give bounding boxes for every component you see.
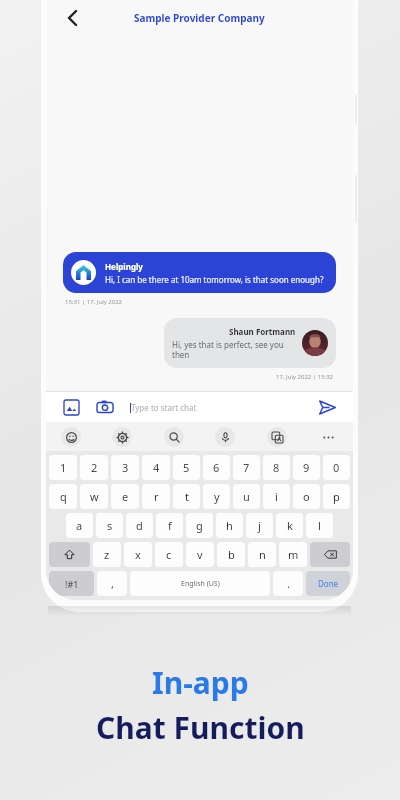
- staticText: i: [275, 489, 278, 504]
- staticText: v: [197, 547, 203, 562]
- button[interactable]: Settings: [112, 427, 132, 447]
- staticText: e: [122, 489, 129, 504]
- button[interactable]: More options: [318, 427, 338, 447]
- staticText: b: [228, 547, 235, 562]
- button[interactable]: g: [186, 513, 213, 538]
- button[interactable]: f: [156, 513, 183, 538]
- button[interactable]: q: [49, 484, 77, 509]
- staticText: m: [288, 547, 299, 562]
- button[interactable]: 7: [233, 455, 260, 480]
- button[interactable]: Voice input: [215, 427, 235, 447]
- staticText: h: [226, 518, 233, 533]
- button[interactable]: o: [293, 484, 320, 509]
- staticText: Done: [318, 578, 339, 589]
- button[interactable]: s: [96, 513, 123, 538]
- staticText: 5: [183, 460, 190, 475]
- staticText: Shaun Fortmann: [229, 326, 296, 337]
- staticText: 0: [333, 460, 340, 475]
- button[interactable]: Search: [164, 427, 184, 447]
- staticText: w: [90, 489, 99, 504]
- button[interactable]: y: [203, 484, 230, 509]
- button[interactable]: 0: [323, 455, 350, 480]
- staticText: p: [333, 489, 340, 504]
- staticText: j: [258, 518, 261, 533]
- button[interactable]: h: [216, 513, 243, 538]
- staticText: !#1: [65, 578, 79, 590]
- button[interactable]: [49, 542, 90, 567]
- staticText: l: [318, 518, 321, 533]
- button[interactable]: 6: [203, 455, 230, 480]
- staticText: z: [104, 547, 110, 562]
- button[interactable]: Shaun Fortmann: [164, 318, 336, 368]
- staticText: x: [135, 547, 141, 562]
- staticText: 2: [91, 460, 98, 475]
- button[interactable]: Translate: [267, 427, 287, 447]
- button[interactable]: j: [246, 513, 273, 538]
- button[interactable]: 9: [293, 455, 320, 480]
- button[interactable]: Attach image: [60, 396, 82, 418]
- button[interactable]: p: [323, 484, 350, 509]
- staticText: 15:31 | 17, July 2022: [65, 298, 123, 306]
- button[interactable]: k: [276, 513, 303, 538]
- button[interactable]: z: [93, 542, 121, 567]
- button[interactable]: 4: [142, 455, 170, 480]
- staticText: 6: [213, 460, 220, 475]
- staticText: s: [107, 518, 113, 533]
- button[interactable]: i: [263, 484, 290, 509]
- button[interactable]: w: [80, 484, 108, 509]
- staticText: ,: [111, 576, 114, 591]
- button[interactable]: 2: [80, 455, 108, 480]
- button[interactable]: Helpingly: [63, 252, 336, 293]
- button[interactable]: [310, 542, 350, 567]
- staticText: q: [60, 489, 67, 504]
- staticText: English (US): [181, 579, 220, 589]
- button[interactable]: Camera: [94, 396, 116, 418]
- staticText: In-app: [152, 662, 249, 703]
- button[interactable]: 8: [263, 455, 290, 480]
- staticText: t: [185, 489, 189, 504]
- staticText: d: [136, 518, 143, 533]
- button[interactable]: Back: [60, 5, 86, 31]
- button[interactable]: d: [126, 513, 153, 538]
- button[interactable]: x: [124, 542, 152, 567]
- staticText: o: [303, 489, 310, 504]
- button[interactable]: n: [248, 542, 276, 567]
- button[interactable]: English (US): [130, 571, 270, 596]
- staticText: Hi, yes that is perfect, see you then: [172, 339, 296, 360]
- staticText: 4: [153, 460, 160, 475]
- button[interactable]: Type to start chat: [130, 402, 315, 413]
- button[interactable]: !#1: [49, 571, 94, 596]
- button[interactable]: 5: [173, 455, 200, 480]
- staticText: u: [243, 489, 250, 504]
- button[interactable]: l: [306, 513, 333, 538]
- button[interactable]: 1: [49, 455, 77, 480]
- button[interactable]: c: [155, 542, 183, 567]
- staticText: f: [168, 518, 172, 533]
- button[interactable]: 3: [111, 455, 139, 480]
- staticText: c: [166, 547, 172, 562]
- staticText: 17, July 2022 | 15:32: [276, 373, 334, 381]
- staticText: Sample Provider Company: [134, 11, 265, 25]
- staticText: k: [287, 518, 293, 533]
- staticText: g: [196, 518, 203, 533]
- button[interactable]: v: [186, 542, 214, 567]
- button[interactable]: Emoji: [61, 427, 81, 447]
- staticText: Type to start chat: [131, 402, 197, 413]
- staticText: Helpingly: [105, 261, 143, 272]
- button[interactable]: b: [217, 542, 245, 567]
- button[interactable]: r: [142, 484, 170, 509]
- button[interactable]: a: [66, 513, 93, 538]
- staticText: 1: [60, 460, 67, 475]
- button[interactable]: Done: [306, 571, 350, 596]
- staticText: Hi, I can be there at 10am tomorrow, is …: [105, 274, 324, 285]
- staticText: 7: [243, 460, 250, 475]
- button[interactable]: t: [173, 484, 200, 509]
- button[interactable]: e: [111, 484, 139, 509]
- button[interactable]: .: [273, 571, 303, 596]
- staticText: .: [287, 576, 290, 591]
- button[interactable]: Send: [315, 395, 339, 419]
- button[interactable]: u: [233, 484, 260, 509]
- button[interactable]: m: [279, 542, 307, 567]
- button[interactable]: ,: [97, 571, 127, 596]
- staticText: n: [259, 547, 266, 562]
